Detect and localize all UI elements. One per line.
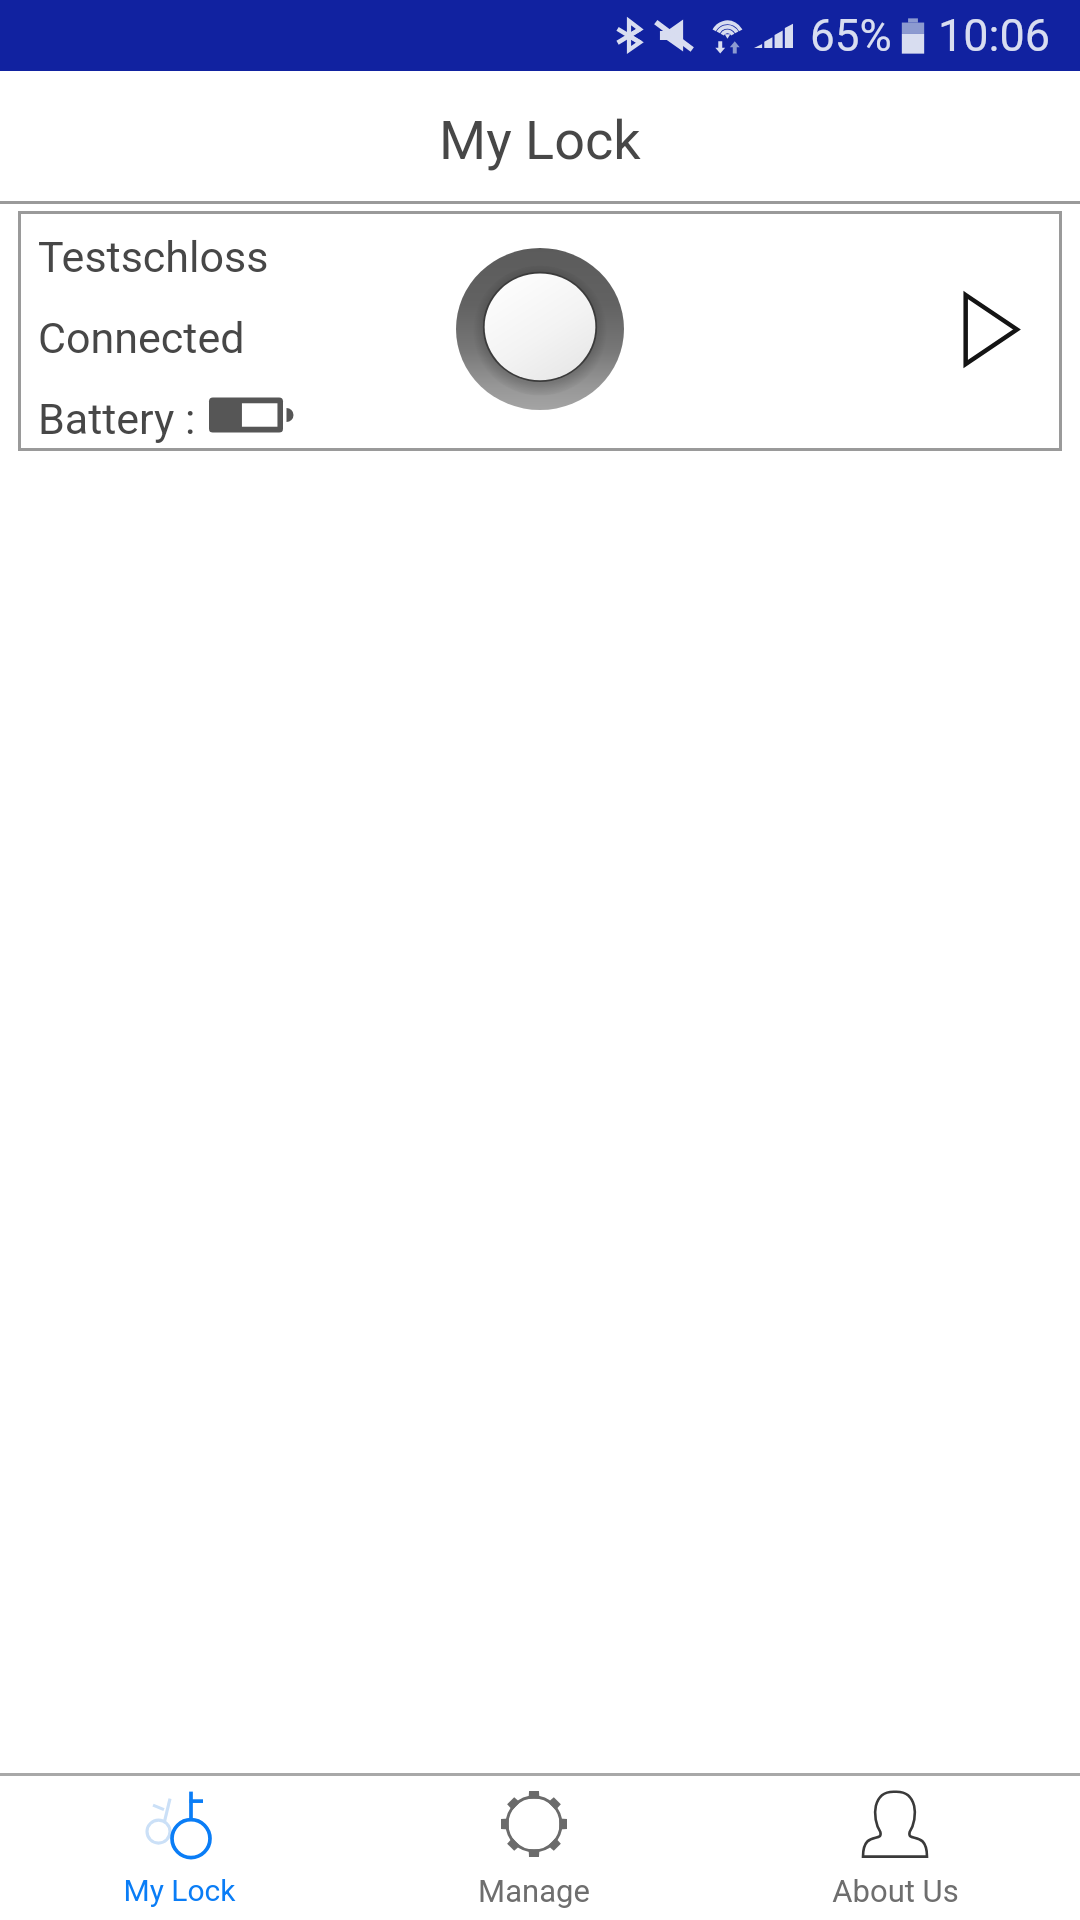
staticText: 10:06 (938, 9, 1051, 62)
staticText: Battery : (38, 394, 196, 444)
button[interactable]: Testschloss (21, 214, 1059, 448)
button[interactable]: Manage (360, 1776, 720, 1920)
button[interactable]: About Us (720, 1776, 1080, 1920)
button[interactable]: Open lock details (958, 292, 1022, 367)
staticText: My Lock (123, 1873, 236, 1908)
staticText: Testschloss (38, 232, 269, 282)
button[interactable]: My Lock (0, 1776, 360, 1920)
staticText: Manage (478, 1873, 590, 1909)
staticText: About Us (832, 1873, 959, 1909)
staticText: Connected (38, 313, 245, 363)
button[interactable]: Unlock (456, 248, 624, 410)
staticText: 65% (810, 10, 892, 62)
staticText: My Lock (439, 109, 641, 172)
